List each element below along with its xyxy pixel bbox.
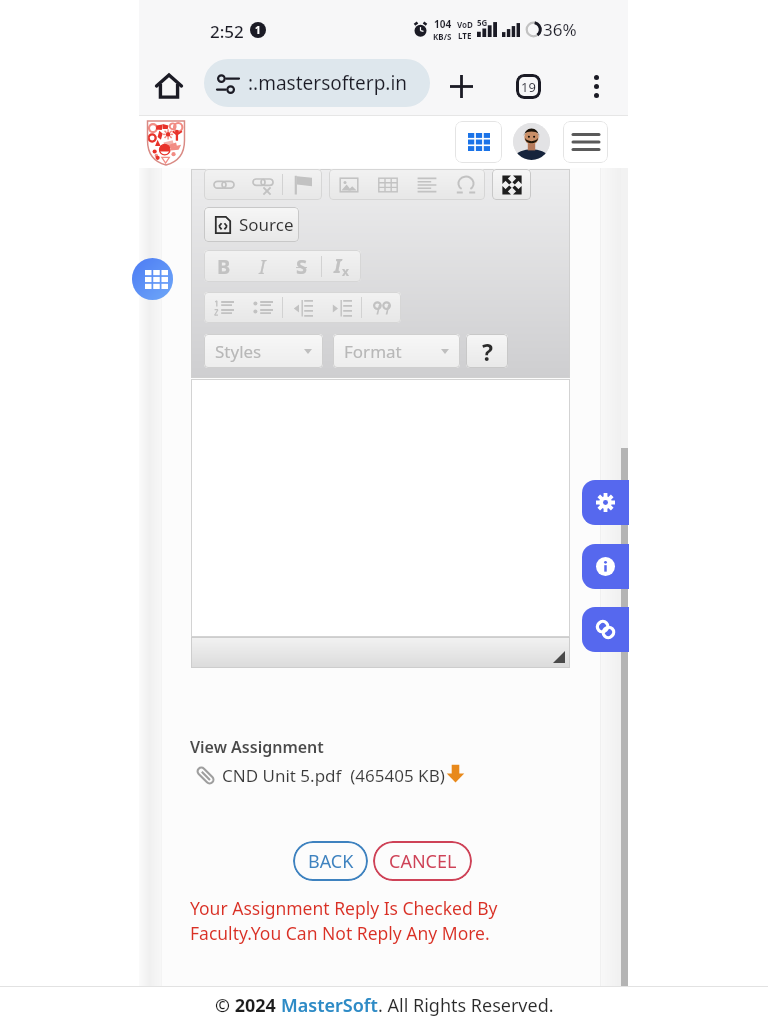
staticText: 5G (477, 17, 488, 28)
button[interactable]: Format B (204, 251, 243, 281)
button[interactable]: More options (576, 66, 616, 106)
button[interactable]: Remove format (322, 251, 361, 281)
staticText: 36% (543, 18, 577, 41)
staticText: S (296, 253, 308, 280)
button[interactable]: Editor tool (329, 170, 368, 199)
staticText: I (259, 253, 266, 280)
button[interactable]: Editor tool (492, 170, 531, 199)
button[interactable]: CND Unit 5.pdf (465405 KB) (195, 764, 465, 787)
button[interactable]: Editor tool (362, 293, 401, 322)
staticText: B (217, 253, 231, 280)
staticText: View Assignment (190, 736, 324, 758)
button[interactable]: Open shortcut grid (132, 258, 173, 300)
staticText: VoD (457, 19, 473, 30)
staticText: BACK (308, 849, 354, 874)
staticText: I (334, 253, 342, 279)
staticText: :.mastersofterp.in (248, 70, 408, 96)
button[interactable]: Copy link (582, 607, 629, 652)
staticText: Source (239, 213, 294, 236)
button[interactable]: :.mastersofterp.in (204, 59, 430, 107)
staticText: LTE (458, 30, 472, 41)
button[interactable]: Editor tool (204, 170, 243, 199)
staticText: 1 (255, 23, 261, 37)
staticText: 104 (434, 17, 452, 31)
button[interactable]: Menu (563, 121, 608, 163)
button[interactable]: Editor tool (283, 293, 322, 322)
staticText: Format (344, 340, 402, 363)
button[interactable]: Editor tool (243, 293, 282, 322)
button[interactable]: CANCEL (373, 841, 472, 881)
staticText: 2:52 (210, 20, 244, 43)
button[interactable]: New tab (441, 66, 481, 106)
button[interactable]: Settings (582, 480, 629, 525)
button[interactable]: Editor tool (322, 293, 361, 322)
button[interactable]: Open tabs (508, 66, 548, 106)
button[interactable]: Editor tool (368, 170, 407, 199)
staticText: KB/S (433, 31, 452, 42)
button[interactable]: Editor tool (283, 170, 322, 199)
staticText: Styles (215, 340, 262, 363)
button[interactable]: Editor tool (243, 170, 282, 199)
button[interactable]: Editor tool (204, 293, 243, 322)
button[interactable]: Profile (513, 123, 550, 160)
staticText: ? (482, 336, 493, 367)
button[interactable]: Editor tool (446, 170, 485, 199)
staticText: CANCEL (389, 849, 457, 874)
button[interactable]: Format (333, 334, 460, 368)
button[interactable]: Help (466, 334, 508, 368)
button[interactable]: Information (582, 544, 629, 589)
button[interactable]: Home (151, 68, 187, 104)
staticText: x (342, 263, 349, 279)
staticText: © 2024 (215, 993, 281, 1018)
staticText: . All Rights Reserved. (378, 993, 554, 1018)
staticText: CND Unit 5.pdf (465405 KB) (222, 764, 445, 787)
staticText: 19 (521, 78, 536, 96)
staticText: Your Assignment Reply Is Checked By Facu… (190, 896, 498, 945)
button[interactable]: Format S (282, 251, 321, 281)
button[interactable]: Source (204, 207, 299, 242)
staticText: MasterSoft (281, 993, 378, 1018)
button[interactable]: BACK (293, 841, 368, 881)
button[interactable]: Styles (204, 334, 323, 368)
button[interactable]: Format I (243, 251, 282, 281)
button[interactable]: Apps grid (455, 121, 502, 163)
button[interactable]: Editor tool (407, 170, 446, 199)
